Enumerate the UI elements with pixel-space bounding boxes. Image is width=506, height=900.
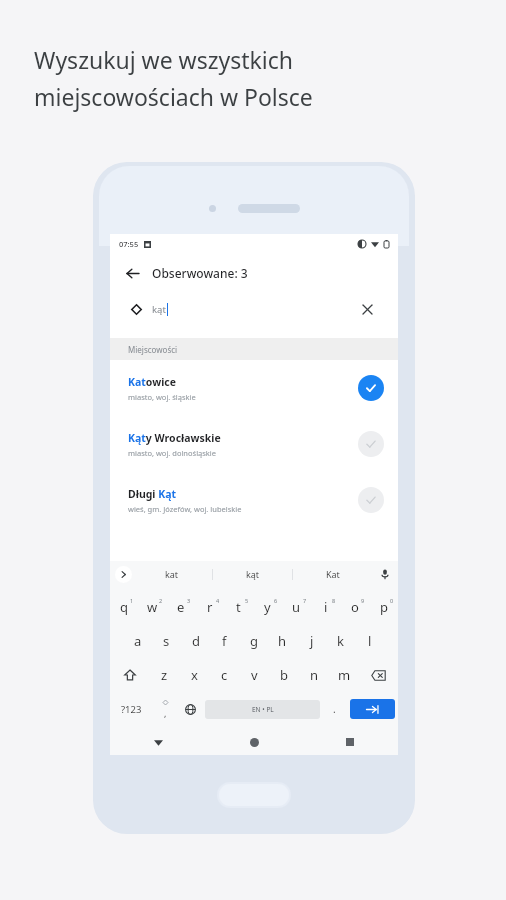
- staticText: kąt: [152, 303, 166, 316]
- button[interactable]: e: [166, 590, 195, 624]
- button[interactable]: r: [195, 590, 224, 624]
- staticText: 1: [130, 597, 134, 604]
- button[interactable]: x: [179, 658, 209, 692]
- staticText: wieś, gm. Józefów, woj. lubelskie: [128, 504, 242, 514]
- button[interactable]: Period: [322, 692, 347, 726]
- button[interactable]: kąt: [213, 561, 292, 587]
- button[interactable]: l: [355, 624, 384, 658]
- staticText: kat: [165, 568, 179, 580]
- staticText: Długi Kąt: [128, 487, 177, 501]
- button[interactable]: v: [239, 658, 269, 692]
- staticText: t: [236, 598, 241, 616]
- button[interactable]: s: [152, 624, 181, 658]
- staticText: 9: [361, 597, 365, 604]
- staticText: s: [163, 632, 170, 650]
- button[interactable]: More suggestions: [115, 566, 132, 583]
- button[interactable]: ?123: [110, 692, 153, 726]
- button[interactable]: Change language: [178, 692, 203, 726]
- button[interactable]: g: [239, 624, 268, 658]
- button[interactable]: j: [297, 624, 326, 658]
- staticText: o: [351, 598, 359, 616]
- button[interactable]: k: [326, 624, 355, 658]
- button[interactable]: b: [269, 658, 299, 692]
- button[interactable]: n: [299, 658, 329, 692]
- button[interactable]: f: [210, 624, 239, 658]
- button[interactable]: Not selected: [358, 487, 384, 513]
- staticText: f: [222, 632, 227, 650]
- button[interactable]: Backspace: [359, 658, 398, 692]
- staticText: miejscowościach w Polsce: [34, 81, 313, 112]
- button[interactable]: z: [149, 658, 179, 692]
- staticText: 0: [390, 597, 394, 604]
- button[interactable]: a: [124, 624, 152, 658]
- staticText: h: [278, 632, 287, 650]
- button[interactable]: Kąty Wrocławskie: [110, 416, 398, 472]
- button[interactable]: Not selected: [358, 431, 384, 457]
- button[interactable]: c: [209, 658, 239, 692]
- button[interactable]: y: [253, 590, 282, 624]
- button[interactable]: p: [369, 590, 398, 624]
- staticText: m: [338, 666, 351, 684]
- button[interactable]: Voice input: [372, 561, 398, 587]
- button[interactable]: EN • PL: [205, 700, 320, 719]
- staticText: r: [207, 598, 213, 616]
- button[interactable]: i: [311, 590, 340, 624]
- staticText: 07:55: [119, 239, 139, 249]
- button[interactable]: Selected: [358, 375, 384, 401]
- button[interactable]: Home: [206, 729, 302, 755]
- staticText: e: [177, 598, 185, 616]
- staticText: Miejscowości: [128, 344, 178, 355]
- button[interactable]: h: [268, 624, 297, 658]
- button[interactable]: Back: [110, 729, 206, 755]
- button[interactable]: t: [224, 590, 253, 624]
- staticText: i: [324, 598, 328, 616]
- button[interactable]: Next: [350, 699, 395, 719]
- button[interactable]: u: [282, 590, 311, 624]
- staticText: 6: [274, 597, 278, 604]
- button[interactable]: Back: [118, 259, 146, 287]
- staticText: 7: [303, 597, 307, 604]
- button[interactable]: o: [340, 590, 369, 624]
- staticText: Kat: [326, 568, 340, 580]
- staticText: n: [310, 666, 319, 684]
- staticText: y: [264, 598, 271, 616]
- staticText: x: [191, 666, 198, 684]
- staticText: c: [221, 666, 228, 684]
- staticText: EN • PL: [252, 705, 274, 714]
- button[interactable]: q: [110, 590, 138, 624]
- button[interactable]: Katowice: [110, 360, 398, 416]
- staticText: g: [250, 632, 258, 650]
- staticText: ,: [164, 707, 167, 719]
- button[interactable]: Comma: [153, 692, 178, 726]
- staticText: l: [368, 632, 372, 650]
- staticText: k: [337, 632, 344, 650]
- button[interactable]: Recents: [302, 729, 398, 755]
- staticText: j: [310, 632, 314, 650]
- staticText: Kąty Wrocławskie: [128, 431, 221, 445]
- button[interactable]: kąt: [120, 292, 388, 326]
- staticText: .: [333, 702, 336, 716]
- staticText: ?123: [121, 703, 142, 716]
- button[interactable]: Kat: [293, 561, 372, 587]
- staticText: p: [380, 598, 388, 616]
- staticText: v: [251, 666, 258, 684]
- staticText: q: [120, 598, 128, 616]
- staticText: b: [280, 666, 288, 684]
- button[interactable]: m: [329, 658, 359, 692]
- button[interactable]: Clear: [357, 299, 377, 319]
- button[interactable]: Długi Kąt: [110, 472, 398, 528]
- staticText: Obserwowane: 3: [152, 265, 248, 281]
- staticText: miasto, woj. śląskie: [128, 392, 196, 402]
- button[interactable]: Shift: [110, 658, 149, 692]
- button[interactable]: d: [181, 624, 210, 658]
- staticText: 2: [159, 597, 163, 604]
- staticText: d: [192, 632, 200, 650]
- button[interactable]: w: [138, 590, 166, 624]
- button[interactable]: kat: [132, 561, 212, 587]
- staticText: 3: [187, 597, 191, 604]
- staticText: miasto, woj. dolnośląskie: [128, 448, 217, 458]
- staticText: w: [147, 598, 158, 616]
- staticText: Wyszukuj we wszystkich: [34, 44, 294, 75]
- staticText: 5: [245, 597, 249, 604]
- staticText: 4: [216, 597, 220, 604]
